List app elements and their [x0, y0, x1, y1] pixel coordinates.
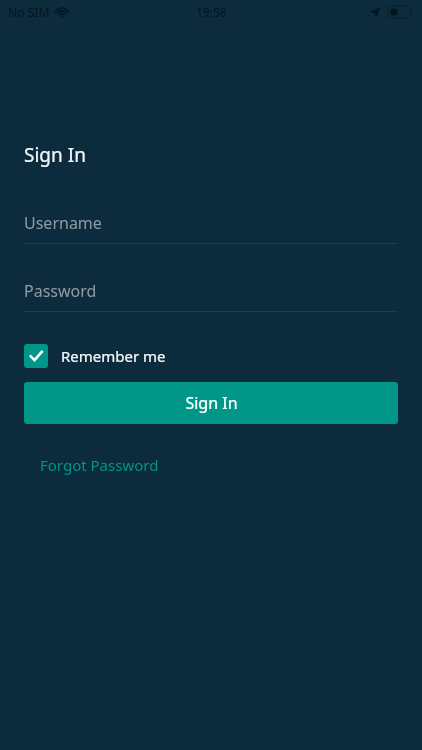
button[interactable]: Remember me: [24, 344, 174, 368]
staticText: Sign In: [185, 392, 238, 414]
staticText: Username: [24, 212, 102, 234]
button[interactable]: Sign In: [24, 382, 398, 424]
staticText: No SIM: [8, 4, 50, 20]
staticText: Password: [24, 280, 97, 302]
button[interactable]: Forgot Password: [24, 451, 167, 479]
staticText: 19:58: [196, 4, 227, 20]
staticText: Sign In: [24, 142, 86, 168]
staticText: Remember me: [61, 346, 166, 366]
staticText: Forgot Password: [40, 455, 159, 475]
